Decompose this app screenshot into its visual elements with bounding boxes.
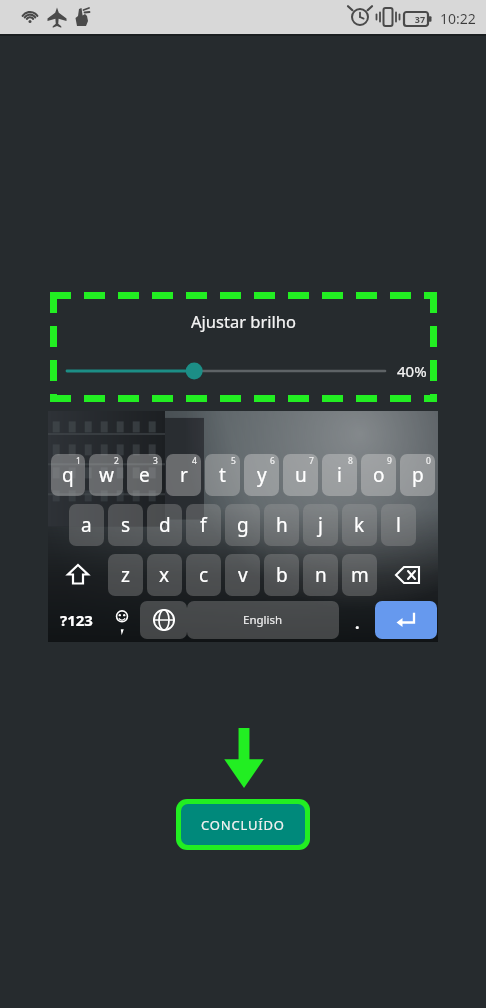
- staticText: 1: [76, 455, 81, 467]
- button[interactable]: x: [147, 554, 182, 596]
- button[interactable]: Emoji and comma: [104, 599, 140, 641]
- staticText: 3: [153, 455, 158, 467]
- staticText: l: [396, 512, 401, 538]
- staticText: ?123: [60, 610, 93, 630]
- button[interactable]: Key: [381, 554, 435, 596]
- button[interactable]: i: [322, 454, 357, 496]
- button[interactable]: English: [187, 601, 339, 639]
- staticText: z: [121, 562, 130, 588]
- staticText: w: [99, 462, 114, 488]
- button[interactable]: Change language: [140, 601, 187, 639]
- staticText: 7: [309, 455, 314, 467]
- staticText: c: [199, 562, 209, 588]
- button[interactable]: l: [381, 504, 416, 546]
- staticText: 37: [408, 13, 432, 25]
- staticText: 40%: [397, 361, 427, 381]
- staticText: s: [121, 512, 131, 538]
- staticText: 8: [348, 455, 353, 467]
- button[interactable]: v: [225, 554, 260, 596]
- staticText: 6: [270, 455, 275, 467]
- staticText: m: [351, 562, 369, 588]
- staticText: r: [180, 462, 188, 488]
- button[interactable]: b: [264, 554, 299, 596]
- staticText: 2: [114, 455, 119, 467]
- button[interactable]: o: [361, 454, 396, 496]
- button[interactable]: p: [400, 454, 435, 496]
- button[interactable]: [67, 358, 385, 384]
- staticText: t: [219, 462, 226, 488]
- staticText: 5: [231, 455, 236, 467]
- button[interactable]: s: [108, 504, 143, 546]
- button[interactable]: t: [205, 454, 240, 496]
- staticText: g: [237, 512, 249, 538]
- staticText: f: [200, 512, 207, 538]
- staticText: 9: [387, 455, 392, 467]
- staticText: a: [81, 512, 92, 538]
- button[interactable]: Enter: [375, 601, 437, 639]
- button[interactable]: g: [225, 504, 260, 546]
- staticText: .: [355, 612, 360, 634]
- button[interactable]: Key: [51, 554, 104, 596]
- staticText: d: [159, 512, 171, 538]
- button[interactable]: j: [303, 504, 338, 546]
- button[interactable]: u: [283, 454, 318, 496]
- button[interactable]: z: [108, 554, 143, 596]
- staticText: u: [295, 462, 307, 488]
- button[interactable]: y: [244, 454, 279, 496]
- button[interactable]: f: [186, 504, 221, 546]
- staticText: x: [159, 562, 170, 588]
- staticText: y: [257, 462, 267, 488]
- staticText: CONCLUÍDO: [201, 816, 285, 834]
- button[interactable]: CONCLUÍDO: [181, 804, 305, 845]
- button[interactable]: ?123: [49, 599, 104, 641]
- staticText: b: [276, 562, 288, 588]
- staticText: 10:22: [440, 9, 476, 28]
- button[interactable]: k: [342, 504, 377, 546]
- button[interactable]: q: [51, 454, 85, 496]
- button[interactable]: a: [69, 504, 104, 546]
- staticText: o: [373, 462, 385, 488]
- button[interactable]: h: [264, 504, 299, 546]
- staticText: 4: [192, 455, 197, 467]
- staticText: q: [62, 462, 74, 488]
- button[interactable]: m: [342, 554, 377, 596]
- button[interactable]: c: [186, 554, 221, 596]
- button[interactable]: n: [303, 554, 338, 596]
- staticText: 0: [426, 455, 431, 467]
- staticText: Ajustar brilho: [50, 310, 437, 332]
- button[interactable]: e: [127, 454, 162, 496]
- button[interactable]: d: [147, 504, 182, 546]
- staticText: English: [243, 612, 283, 628]
- staticText: j: [318, 512, 323, 538]
- staticText: i: [337, 462, 342, 488]
- button[interactable]: w: [89, 454, 123, 496]
- staticText: n: [315, 562, 327, 588]
- staticText: h: [276, 512, 288, 538]
- staticText: p: [412, 462, 424, 488]
- button[interactable]: r: [166, 454, 201, 496]
- staticText: k: [354, 512, 365, 538]
- staticText: e: [139, 462, 150, 488]
- button[interactable]: .: [339, 599, 375, 641]
- staticText: v: [238, 562, 248, 588]
